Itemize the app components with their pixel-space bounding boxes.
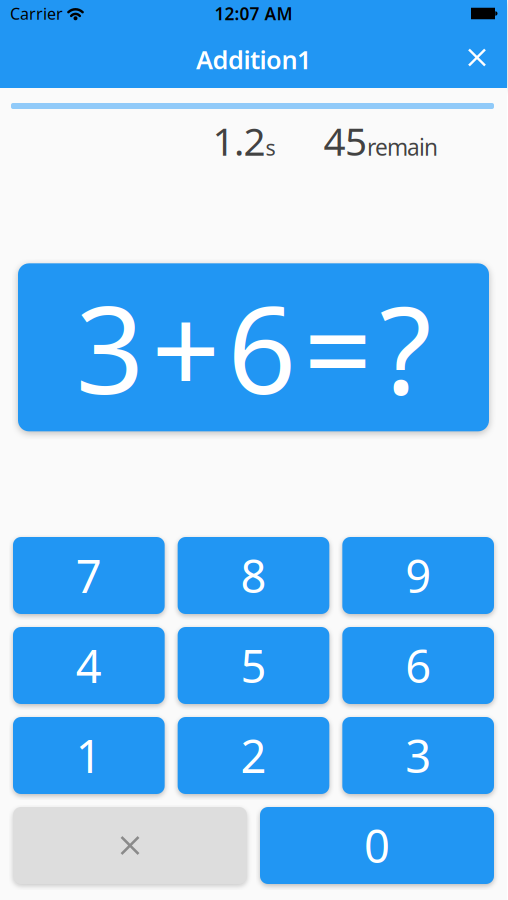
button[interactable]: 4 — [13, 627, 165, 704]
staticText: remain — [367, 132, 438, 162]
staticText: 6 — [405, 635, 431, 696]
staticText: 0 — [364, 815, 390, 876]
staticText: 45 — [323, 115, 367, 166]
button[interactable]: 3 — [342, 717, 494, 794]
staticText: 12:07 AM — [214, 2, 292, 25]
staticText: 4 — [76, 635, 102, 696]
button[interactable]: 9 — [342, 537, 494, 614]
button[interactable]: 6 — [342, 627, 494, 704]
staticText: Carrier — [10, 3, 63, 24]
staticText: 5 — [240, 635, 266, 696]
staticText: 8 — [240, 545, 266, 606]
button[interactable]: 5 — [178, 627, 329, 704]
staticText: 3+6=? — [75, 268, 431, 427]
button[interactable]: 8 — [178, 537, 329, 614]
staticText: s — [265, 133, 275, 161]
staticText: 3 — [405, 725, 431, 786]
button[interactable]: Delete — [13, 807, 247, 884]
button[interactable]: Close — [455, 35, 499, 79]
staticText: 9 — [405, 545, 431, 606]
staticText: 2 — [240, 725, 266, 786]
button[interactable]: 1 — [13, 717, 165, 794]
button[interactable]: 0 — [260, 807, 494, 884]
staticText: 7 — [76, 545, 102, 606]
staticText: 1 — [76, 725, 102, 786]
button[interactable]: 7 — [13, 537, 165, 614]
button[interactable]: 2 — [178, 717, 329, 794]
staticText: 1.2 — [212, 115, 265, 166]
staticText: Addition1 — [196, 43, 311, 76]
